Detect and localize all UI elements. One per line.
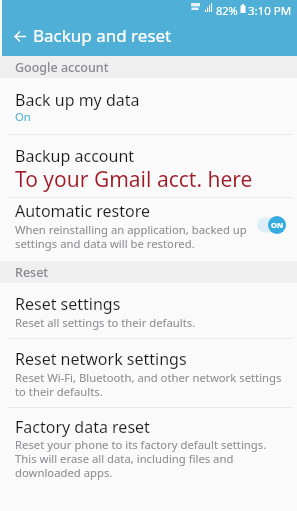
staticText: Reset your phone to its factory default … (15, 437, 283, 480)
staticText: Backup account (15, 145, 135, 167)
button[interactable]: Automatic restore (0, 198, 297, 261)
staticText: Back up my data (15, 89, 140, 111)
staticText: Reset all settings to their defaults. (15, 315, 196, 330)
staticText: Reset settings (15, 293, 121, 315)
button[interactable]: Backup account (0, 135, 297, 197)
staticText: Reset (15, 264, 49, 281)
staticText: Reset network settings (15, 348, 187, 370)
staticText: Reset Wi-Fi, Bluetooth, and other networ… (15, 370, 287, 399)
staticText: 82% (216, 3, 238, 18)
staticText: On (15, 109, 31, 124)
button[interactable]: Factory data reset (0, 408, 297, 511)
staticText: Factory data reset (15, 416, 150, 438)
staticText: When reinstalling an application, backed… (15, 222, 259, 251)
button[interactable]: Back up my data (0, 78, 297, 134)
button[interactable]: Back (8, 21, 32, 51)
staticText: Backup and reset (33, 24, 172, 47)
button[interactable]: Reset settings (0, 283, 297, 338)
staticText: 3:10 PM (248, 3, 292, 19)
staticText: To your Gmail acct. here (15, 165, 253, 194)
button[interactable]: Automatic restore toggle (256, 215, 286, 235)
button[interactable]: Reset network settings (0, 339, 297, 407)
staticText: ON (271, 220, 284, 230)
staticText: Automatic restore (15, 200, 150, 222)
staticText: Google account (15, 59, 109, 76)
